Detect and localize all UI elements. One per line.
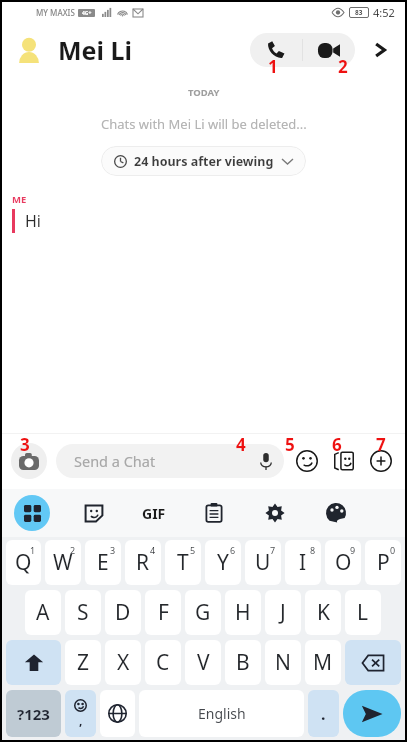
staticText: B xyxy=(236,648,250,677)
button[interactable]: F xyxy=(145,590,181,635)
staticText: 4 xyxy=(150,544,156,556)
button[interactable]: 24 hours after viewing xyxy=(101,146,306,176)
button[interactable]: G xyxy=(185,590,221,635)
button[interactable]: T xyxy=(165,540,201,585)
staticText: I xyxy=(299,548,307,577)
button[interactable]: Camera xyxy=(11,443,47,479)
button[interactable]: U xyxy=(245,540,281,585)
staticText: 3 xyxy=(20,433,30,456)
staticText: MY MAXIS xyxy=(36,7,75,18)
button[interactable]: B xyxy=(225,640,261,685)
button[interactable]: Memories xyxy=(329,446,359,476)
button[interactable]: GIF xyxy=(138,500,170,527)
button[interactable]: Theme xyxy=(319,496,353,530)
staticText: 7 xyxy=(270,544,276,556)
staticText: K xyxy=(317,598,330,627)
staticText: TODAY xyxy=(188,86,220,99)
staticText: H xyxy=(235,598,251,627)
staticText: A xyxy=(36,598,50,627)
staticText: ME xyxy=(12,193,27,206)
button[interactable]: Stickers xyxy=(77,496,111,530)
button[interactable]: N xyxy=(265,640,301,685)
button[interactable]: Z xyxy=(65,640,101,685)
button[interactable]: ?123 xyxy=(6,690,61,737)
staticText: 6 xyxy=(332,433,342,456)
button[interactable]: Send a Chat xyxy=(56,444,284,478)
button[interactable]: Q xyxy=(6,540,41,585)
button[interactable]: Emoji xyxy=(65,690,96,737)
button[interactable]: Video call xyxy=(303,33,355,67)
button[interactable]: Voice call xyxy=(250,33,302,67)
staticText: 2 xyxy=(338,55,348,78)
staticText: X xyxy=(117,648,130,677)
button[interactable]: Y xyxy=(205,540,241,585)
staticText: E xyxy=(97,548,109,577)
staticText: G xyxy=(195,598,211,627)
button[interactable]: I xyxy=(285,540,321,585)
button[interactable]: Backspace xyxy=(345,640,401,685)
staticText: 4:52 xyxy=(373,5,395,20)
staticText: Q xyxy=(15,548,32,577)
button[interactable]: Change language xyxy=(100,690,135,737)
staticText: 0 xyxy=(390,544,396,556)
button[interactable]: . xyxy=(308,690,339,737)
button[interactable]: W xyxy=(45,540,81,585)
staticText: V xyxy=(197,648,210,677)
button[interactable]: C xyxy=(145,640,181,685)
button[interactable]: Apps xyxy=(14,495,50,531)
staticText: 4G+ xyxy=(82,10,92,17)
staticText: 7 xyxy=(376,433,386,456)
staticText: 83 xyxy=(355,8,363,17)
button[interactable]: R xyxy=(125,540,161,585)
button[interactable]: K xyxy=(305,590,341,635)
staticText: Hi xyxy=(25,210,41,232)
button[interactable]: Shift xyxy=(6,640,61,685)
staticText: 24 hours after viewing xyxy=(134,153,274,170)
staticText: 5 xyxy=(285,433,295,456)
staticText: F xyxy=(158,598,169,627)
button[interactable]: O xyxy=(325,540,361,585)
button[interactable]: English xyxy=(139,690,304,737)
staticText: 4 xyxy=(236,433,246,456)
staticText: 3 xyxy=(110,544,116,556)
button[interactable]: Clipboard xyxy=(197,496,231,530)
staticText: D xyxy=(115,598,131,627)
staticText: , xyxy=(79,712,83,728)
button[interactable] xyxy=(12,33,46,67)
staticText: 9 xyxy=(350,544,356,556)
button[interactable]: Settings xyxy=(258,496,292,530)
staticText: R xyxy=(136,548,150,577)
staticText: 2 xyxy=(70,544,76,556)
button[interactable]: D xyxy=(105,590,141,635)
staticText: M xyxy=(313,648,333,677)
button[interactable]: A xyxy=(25,590,61,635)
button[interactable]: S xyxy=(65,590,101,635)
staticText: 6 xyxy=(230,544,236,556)
staticText: P xyxy=(377,548,390,577)
button[interactable]: Stickers xyxy=(292,446,322,476)
staticText: Z xyxy=(77,648,90,677)
button[interactable]: Send xyxy=(343,690,401,737)
button[interactable]: V xyxy=(185,640,221,685)
staticText: T xyxy=(177,548,189,577)
button[interactable]: M xyxy=(305,640,341,685)
button[interactable]: More xyxy=(366,446,396,476)
staticText: W xyxy=(53,548,73,577)
staticText: J xyxy=(280,598,286,627)
staticText: L xyxy=(357,598,369,627)
staticText: S xyxy=(77,598,89,627)
staticText: . xyxy=(321,703,326,725)
staticText: Mei Li xyxy=(58,33,132,67)
button[interactable]: L xyxy=(345,590,381,635)
staticText: N xyxy=(275,648,291,677)
button[interactable]: X xyxy=(105,640,141,685)
staticText: 5 xyxy=(190,544,196,556)
button[interactable]: P xyxy=(365,540,401,585)
button[interactable]: E xyxy=(85,540,121,585)
button[interactable]: Open profile xyxy=(365,35,395,65)
staticText: Chats with Mei Li will be deleted... xyxy=(101,115,307,133)
button[interactable]: H xyxy=(225,590,261,635)
staticText: U xyxy=(255,548,271,577)
button[interactable]: J xyxy=(265,590,301,635)
staticText: 1 xyxy=(30,544,36,556)
